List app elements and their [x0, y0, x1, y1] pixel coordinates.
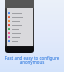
button[interactable]: [7, 15, 33, 19]
button[interactable]: [7, 11, 33, 15]
button[interactable]: [7, 39, 33, 43]
staticText: Fast and easy to configure: [0, 55, 64, 61]
button[interactable]: [7, 23, 33, 27]
staticText: anonymous: [0, 59, 64, 65]
button[interactable]: [7, 19, 33, 23]
button[interactable]: [7, 31, 33, 35]
button[interactable]: [7, 35, 33, 39]
button[interactable]: [7, 27, 33, 31]
